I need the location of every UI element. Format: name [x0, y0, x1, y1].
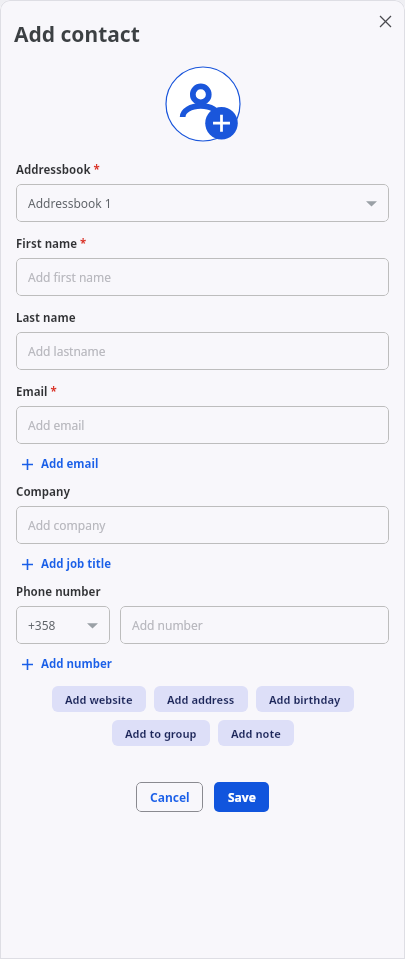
button[interactable]: Add first name: [16, 258, 389, 296]
staticText: Last name: [16, 310, 76, 326]
staticText: Add email: [28, 417, 85, 433]
button[interactable]: Save: [214, 782, 269, 812]
staticText: Add to group: [125, 726, 197, 741]
staticText: Add lastname: [28, 343, 106, 359]
button[interactable]: Addressbook 1: [16, 184, 389, 222]
button[interactable]: Add email: [16, 453, 105, 475]
button[interactable]: Add note: [218, 720, 294, 746]
button[interactable]: +358: [16, 606, 110, 644]
staticText: Add job title: [41, 556, 112, 572]
staticText: +358: [28, 617, 56, 633]
button[interactable]: Close: [371, 7, 399, 35]
staticText: Save: [228, 789, 256, 805]
staticText: Addressbook *: [16, 162, 100, 178]
staticText: Add contact: [14, 20, 140, 49]
staticText: Add number: [41, 656, 112, 672]
button[interactable]: Add email: [16, 406, 389, 444]
button[interactable]: Add lastname: [16, 332, 389, 370]
staticText: Email *: [16, 384, 57, 400]
staticText: Addressbook 1: [28, 195, 112, 211]
staticText: Add company: [28, 517, 106, 533]
staticText: Add birthday: [269, 692, 341, 707]
button[interactable]: Add birthday: [256, 686, 354, 712]
button[interactable]: Add address: [154, 686, 248, 712]
button[interactable]: Add number: [16, 653, 118, 675]
button[interactable]: Cancel: [136, 782, 203, 812]
staticText: Add email: [41, 456, 99, 472]
staticText: Add address: [167, 692, 235, 707]
button[interactable]: Add to group: [112, 720, 210, 746]
button[interactable]: Add company: [16, 506, 389, 544]
button[interactable]: Add number: [120, 606, 389, 644]
button[interactable]: Add contact photo: [165, 66, 241, 142]
staticText: Add first name: [28, 269, 112, 285]
staticText: Cancel: [150, 789, 190, 805]
staticText: Company: [16, 484, 70, 500]
staticText: First name *: [16, 236, 87, 252]
button[interactable]: Add website: [52, 686, 146, 712]
staticText: Add number: [132, 617, 203, 633]
button[interactable]: Add job title: [16, 553, 118, 575]
staticText: Add note: [231, 726, 281, 741]
staticText: Phone number: [16, 584, 101, 600]
staticText: Add website: [65, 692, 133, 707]
